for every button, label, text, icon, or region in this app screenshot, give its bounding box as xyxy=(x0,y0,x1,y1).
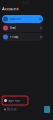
button[interactable]: Compose xyxy=(44,106,50,113)
button[interactable]: Email xyxy=(2,24,43,32)
staticText: Email xyxy=(10,26,16,30)
staticText: Sign Out xyxy=(8,99,20,102)
button[interactable]: Delete xyxy=(2,107,28,112)
button[interactable]: Privacy xyxy=(2,33,43,41)
staticText: Delete xyxy=(7,108,17,111)
staticText: Account xyxy=(10,17,21,21)
button[interactable]: Sign Out xyxy=(2,96,28,105)
staticText: Account xyxy=(2,6,19,11)
staticText: 9:41 xyxy=(23,1,30,5)
staticText: Privacy xyxy=(10,35,18,39)
button[interactable]: Account xyxy=(2,15,43,23)
